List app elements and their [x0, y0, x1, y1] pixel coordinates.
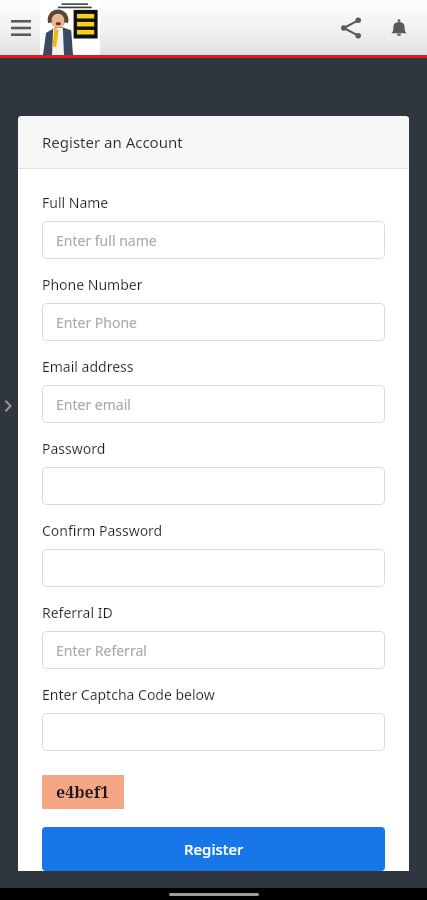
- staticText: Password: [42, 439, 106, 458]
- staticText: Enter full name: [56, 231, 157, 250]
- button[interactable]: Enter Phone: [42, 303, 385, 341]
- staticText: Enter email: [56, 395, 131, 414]
- button[interactable]: Enter full name: [42, 221, 385, 259]
- button[interactable]: e4bef1: [42, 775, 124, 809]
- button[interactable]: Enter email: [42, 385, 385, 423]
- button[interactable]: Notifications: [375, 4, 423, 52]
- button[interactable]: [42, 549, 385, 587]
- staticText: Phone Number: [42, 275, 143, 294]
- button[interactable]: App logo: [40, 0, 100, 55]
- staticText: Register: [184, 839, 244, 859]
- staticText: Enter Referral: [56, 641, 147, 660]
- staticText: Full Name: [42, 193, 109, 212]
- button[interactable]: [42, 713, 385, 751]
- staticText: Enter Phone: [56, 313, 137, 332]
- staticText: e4bef1: [56, 781, 110, 803]
- button[interactable]: Open side panel: [0, 385, 18, 427]
- staticText: Confirm Password: [42, 521, 163, 540]
- staticText: Referral ID: [42, 603, 113, 622]
- button[interactable]: Open navigation menu: [4, 11, 38, 45]
- button[interactable]: Share: [327, 4, 375, 52]
- button[interactable]: [42, 467, 385, 505]
- staticText: Register an Account: [42, 132, 183, 152]
- staticText: Email address: [42, 357, 134, 376]
- button[interactable]: Enter Referral: [42, 631, 385, 669]
- staticText: Enter Captcha Code below: [42, 685, 215, 704]
- button[interactable]: Register: [42, 827, 385, 871]
